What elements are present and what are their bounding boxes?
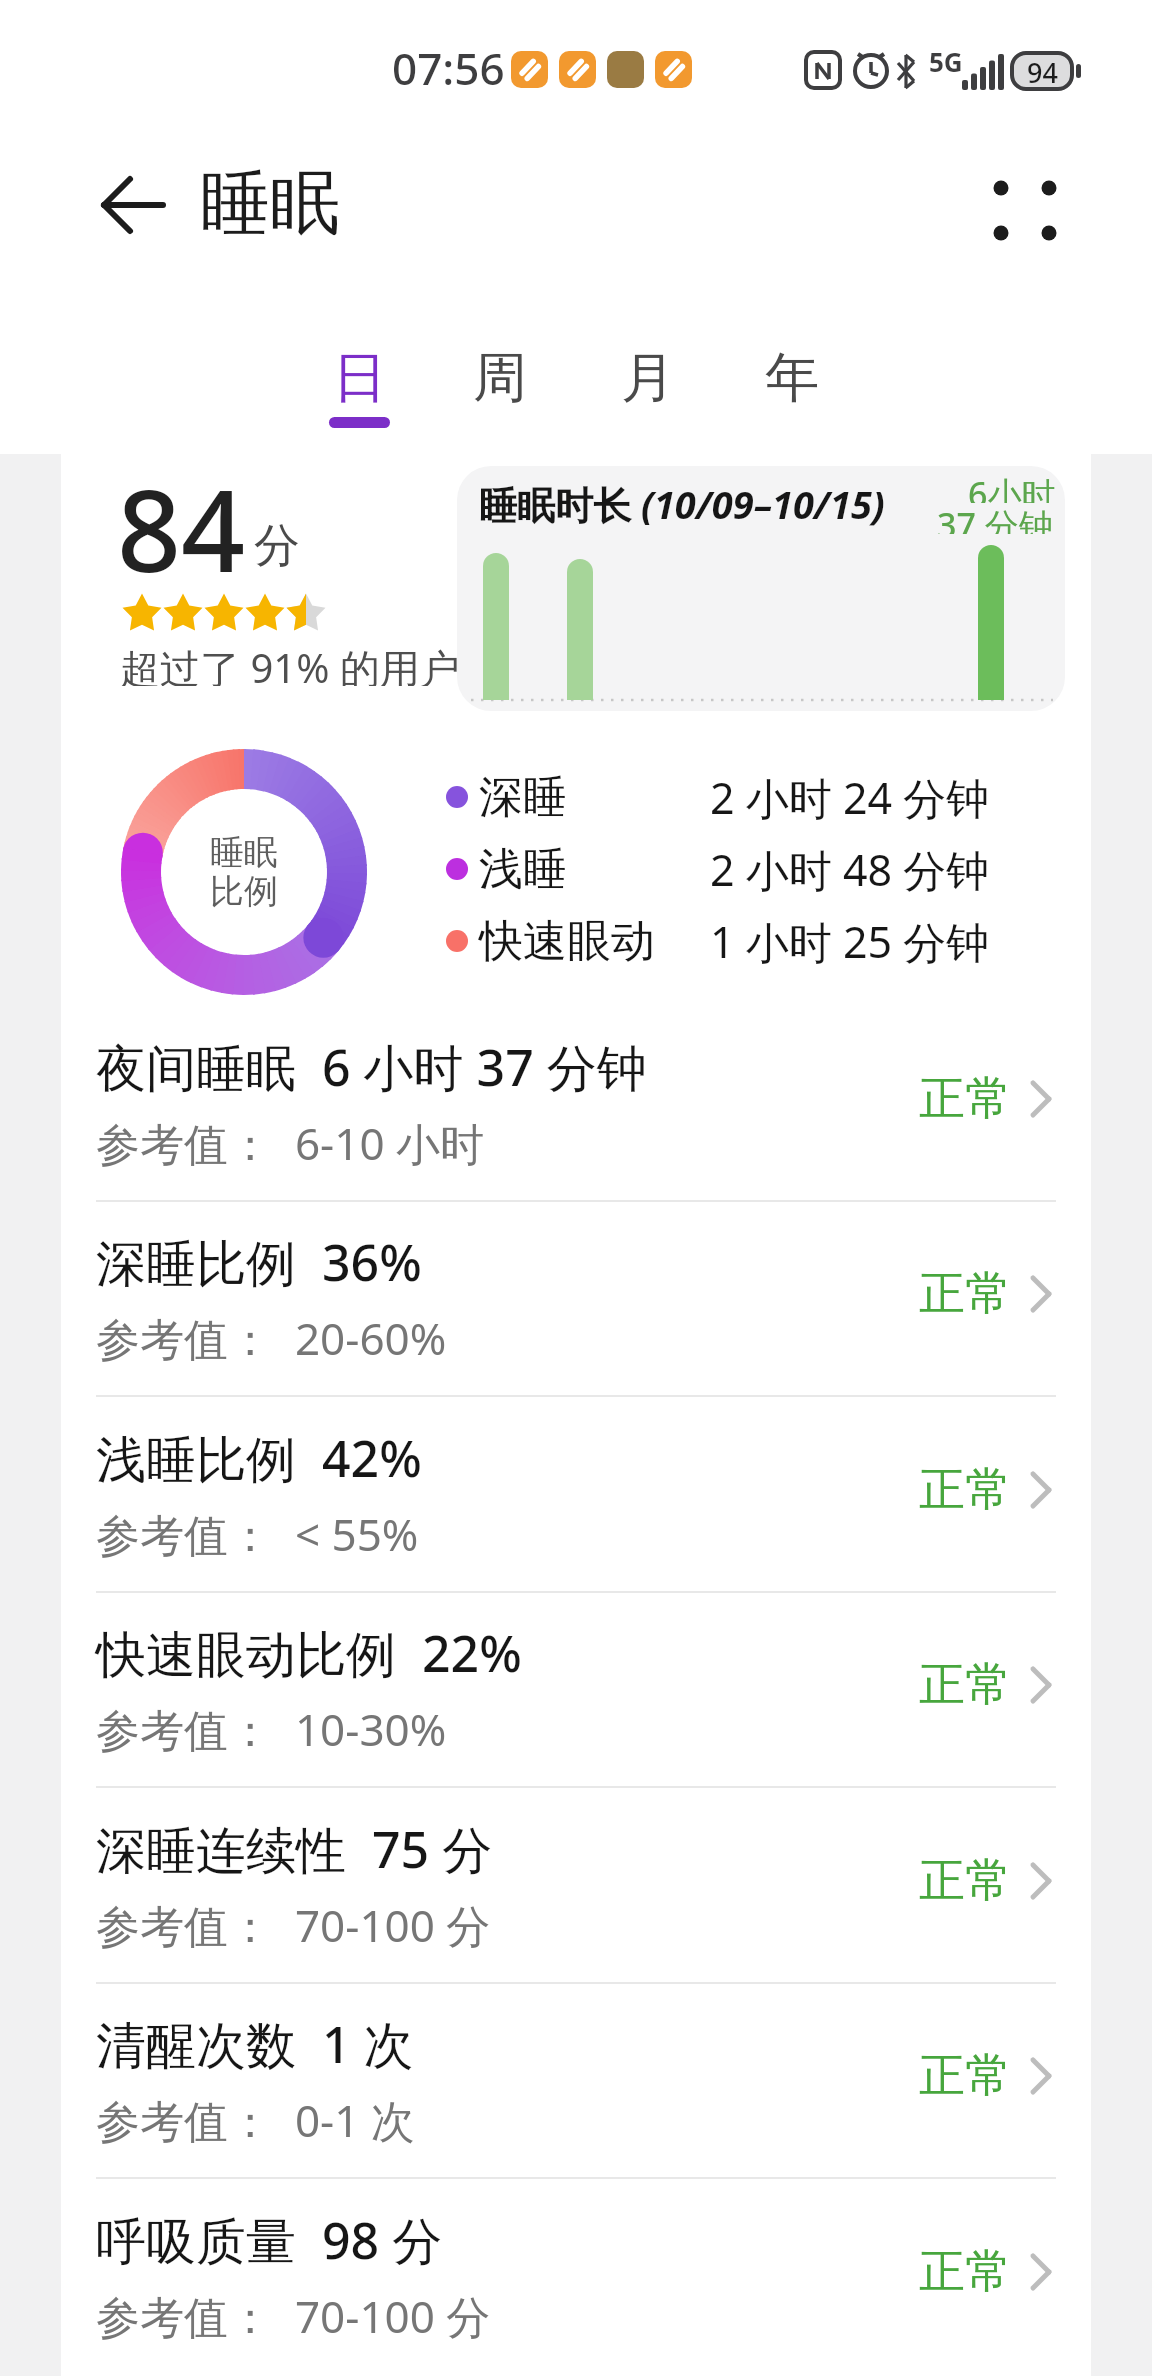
staticText: 周	[473, 344, 527, 412]
button[interactable]: 浅睡比例 42%	[61, 1397, 1091, 1593]
staticText: 深睡连续性 75 分	[96, 1815, 493, 1883]
staticText: 2 小时 24 分钟	[710, 768, 990, 827]
staticText: 参考值： < 55%	[96, 1504, 419, 1564]
button[interactable]: 呼吸质量 98 分	[61, 2179, 1091, 2375]
staticText: 94	[1027, 54, 1058, 88]
staticText: 日	[333, 344, 387, 412]
button[interactable]: 快速眼动比例 22%	[61, 1592, 1091, 1788]
staticText: 比例	[210, 870, 278, 913]
button[interactable]: 清醒次数 1 次	[61, 1983, 1091, 2179]
staticText: 正常	[919, 1070, 1011, 1128]
staticText: 分	[254, 517, 300, 575]
button[interactable]: 夜间睡眠 6 小时 37 分钟	[61, 1006, 1091, 1202]
staticText: 浅睡	[479, 842, 567, 897]
staticText: 睡眠	[200, 160, 340, 248]
staticText: 快速眼动	[479, 914, 655, 969]
button[interactable]: 深睡比例 36%	[61, 1201, 1091, 1397]
staticText: 参考值： 70-100 分	[96, 2286, 491, 2346]
staticText: 参考值： 0-1 次	[96, 2090, 415, 2150]
staticText: 参考值： 20-60%	[96, 1308, 447, 1368]
button[interactable]: 日	[300, 332, 420, 424]
staticText: 5G	[929, 44, 963, 74]
staticText: 浅睡比例 42%	[96, 1424, 422, 1492]
staticText: 2 小时 48 分钟	[710, 840, 990, 899]
button[interactable]	[85, 165, 180, 245]
staticText: 正常	[919, 1265, 1011, 1323]
staticText: 6小时	[968, 471, 1056, 503]
staticText: 正常	[919, 2047, 1011, 2105]
staticText: 07:56	[392, 38, 505, 90]
staticText: 正常	[919, 2243, 1011, 2301]
staticText: 正常	[919, 1852, 1011, 1910]
staticText: 睡眠时长	[479, 478, 641, 530]
staticText: 月	[621, 344, 675, 412]
button[interactable]: 睡眠时长	[457, 466, 1065, 711]
button[interactable]	[975, 162, 1070, 254]
button[interactable]: 月	[588, 332, 708, 424]
staticText: 年	[765, 344, 819, 412]
button[interactable]: 年	[732, 332, 852, 424]
staticText: 深睡比例 36%	[96, 1228, 422, 1296]
staticText: 1 小时 25 分钟	[710, 912, 990, 971]
staticText: 84	[117, 452, 246, 605]
button[interactable]: 周	[440, 332, 560, 424]
staticText: 正常	[919, 1656, 1011, 1714]
staticText: 快速眼动比例 22%	[96, 1619, 522, 1687]
staticText: 超过了 91% 的用户	[120, 640, 460, 686]
button[interactable]: 深睡连续性 75 分	[61, 1788, 1091, 1984]
staticText: 参考值： 70-100 分	[96, 1895, 491, 1955]
staticText: 参考值： 6-10 小时	[96, 1113, 484, 1173]
staticText: 夜间睡眠 6 小时 37 分钟	[96, 1033, 647, 1101]
staticText: 37 分钟	[937, 502, 1053, 534]
staticText: 清醒次数 1 次	[96, 2010, 414, 2078]
staticText: 呼吸质量 98 分	[96, 2206, 443, 2274]
staticText: 睡眠	[210, 831, 278, 874]
staticText: 正常	[919, 1461, 1011, 1519]
staticText: (10/09–10/15)	[641, 478, 885, 530]
staticText: 参考值： 10-30%	[96, 1699, 447, 1759]
staticText: 深睡	[479, 770, 567, 825]
